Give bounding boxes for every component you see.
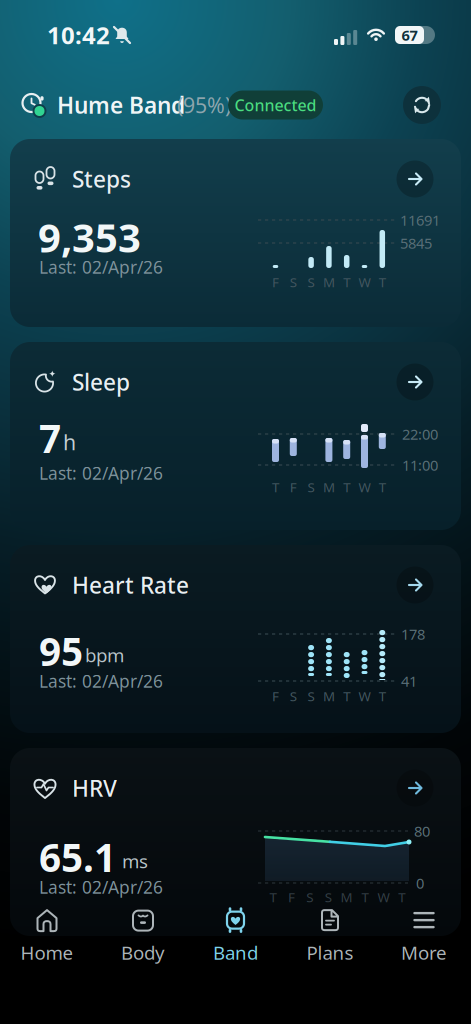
- staticText: F: [288, 888, 295, 906]
- staticText: 0: [416, 873, 424, 893]
- staticText: 11:00: [402, 455, 438, 475]
- staticText: h: [63, 428, 76, 456]
- staticText: 11691: [400, 210, 440, 230]
- staticText: 41: [401, 671, 417, 691]
- staticText: Last: 02/Apr/26: [39, 875, 163, 898]
- staticText: 22:00: [402, 424, 438, 444]
- staticText: W: [358, 687, 370, 705]
- staticText: T: [343, 687, 350, 705]
- staticText: More: [401, 940, 447, 965]
- staticText: S: [325, 888, 332, 906]
- staticText: W: [358, 478, 370, 496]
- staticText: (95%): [177, 91, 231, 119]
- staticText: Last: 02/Apr/26: [39, 461, 163, 484]
- staticText: S: [306, 888, 313, 906]
- staticText: S: [290, 687, 297, 705]
- staticText: Band: [213, 940, 258, 965]
- button[interactable]: Open Sleep: [396, 363, 433, 400]
- button[interactable]: More: [384, 906, 464, 966]
- staticText: Steps: [72, 164, 131, 194]
- staticText: T: [398, 888, 405, 906]
- staticText: T: [379, 478, 386, 496]
- staticText: T: [379, 273, 386, 291]
- staticText: 7: [39, 412, 61, 464]
- staticText: M: [323, 273, 335, 291]
- button[interactable]: Home: [7, 906, 87, 966]
- staticText: 95: [39, 625, 83, 677]
- button[interactable]: Band: [195, 906, 275, 966]
- staticText: W: [377, 888, 389, 906]
- staticText: 65.1: [39, 831, 116, 883]
- staticText: 178: [401, 624, 425, 644]
- staticText: 9,353: [38, 210, 141, 263]
- staticText: Last: 02/Apr/26: [39, 669, 163, 692]
- button[interactable]: Body: [103, 906, 183, 966]
- staticText: M: [323, 478, 335, 496]
- button[interactable]: Open Steps: [396, 160, 433, 197]
- staticText: T: [343, 478, 350, 496]
- staticText: S: [290, 273, 297, 291]
- staticText: Home: [20, 940, 73, 965]
- staticText: Heart Rate: [72, 570, 189, 600]
- button[interactable]: Open Heart Rate: [396, 566, 433, 603]
- staticText: F: [272, 687, 279, 705]
- staticText: M: [341, 888, 353, 906]
- staticText: Connected: [234, 94, 316, 116]
- staticText: S: [308, 273, 315, 291]
- staticText: Last: 02/Apr/26: [39, 255, 163, 278]
- staticText: Sleep: [72, 367, 130, 397]
- button[interactable]: Open HRV: [396, 769, 433, 806]
- staticText: 10:42: [47, 19, 110, 51]
- staticText: T: [272, 478, 279, 496]
- staticText: W: [358, 273, 370, 291]
- staticText: 5845: [400, 233, 432, 253]
- staticText: HRV: [72, 773, 117, 803]
- button[interactable]: Refresh: [403, 86, 441, 124]
- staticText: M: [323, 687, 335, 705]
- staticText: S: [308, 478, 315, 496]
- staticText: 67: [401, 25, 417, 45]
- staticText: T: [343, 273, 350, 291]
- staticText: T: [361, 888, 368, 906]
- staticText: bpm: [85, 643, 124, 667]
- staticText: F: [272, 273, 279, 291]
- staticText: Hume Band: [57, 90, 185, 120]
- staticText: 80: [414, 821, 430, 841]
- staticText: Plans: [306, 940, 353, 965]
- staticText: ms: [122, 849, 148, 873]
- staticText: F: [290, 478, 297, 496]
- staticText: T: [269, 888, 276, 906]
- button[interactable]: Plans: [290, 906, 370, 966]
- staticText: T: [379, 687, 386, 705]
- staticText: S: [308, 687, 315, 705]
- staticText: Body: [121, 940, 165, 965]
